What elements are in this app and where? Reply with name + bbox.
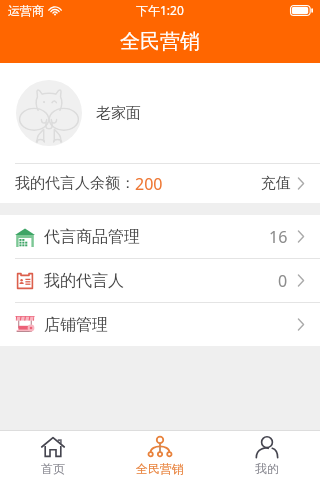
staticText: 我的 [255, 461, 279, 476]
staticText: 16 [269, 226, 288, 248]
button[interactable]: 我的代言人余额： [0, 164, 320, 203]
button[interactable]: 代言商品管理 [0, 215, 320, 258]
staticText: 200 [135, 173, 163, 195]
button[interactable]: 我的 [213, 431, 320, 480]
staticText: 0 [278, 270, 288, 292]
staticText: 全民营销 [136, 461, 184, 476]
staticText: 下午1:20 [136, 2, 184, 18]
button[interactable]: 首页 [0, 431, 106, 480]
staticText: 运营商 [8, 3, 44, 18]
staticText: 我的代言人 [44, 271, 124, 291]
staticText: 代言商品管理 [44, 227, 140, 247]
staticText: 我的代言人余额： [15, 174, 135, 193]
staticText: 全民营销 [120, 29, 200, 54]
button[interactable]: 我的代言人 [0, 259, 320, 302]
staticText: 首页 [41, 461, 65, 476]
button[interactable]: 店铺管理 [0, 303, 320, 346]
staticText: 老家面 [96, 104, 141, 123]
button[interactable]: 老家面 [0, 63, 320, 163]
staticText: 店铺管理 [44, 315, 108, 335]
button[interactable]: 全民营销 [106, 431, 213, 480]
staticText: 充值 [261, 174, 291, 193]
